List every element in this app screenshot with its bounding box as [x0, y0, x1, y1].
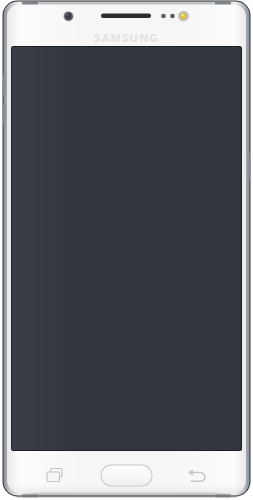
button[interactable]: Samsung Galaxy phone, screen off [0, 0, 253, 500]
button[interactable]: Back [184, 462, 212, 490]
button[interactable]: Home [100, 463, 153, 487]
staticText: SAMSUNG [84, 30, 169, 45]
button[interactable]: Recent apps [41, 462, 69, 490]
